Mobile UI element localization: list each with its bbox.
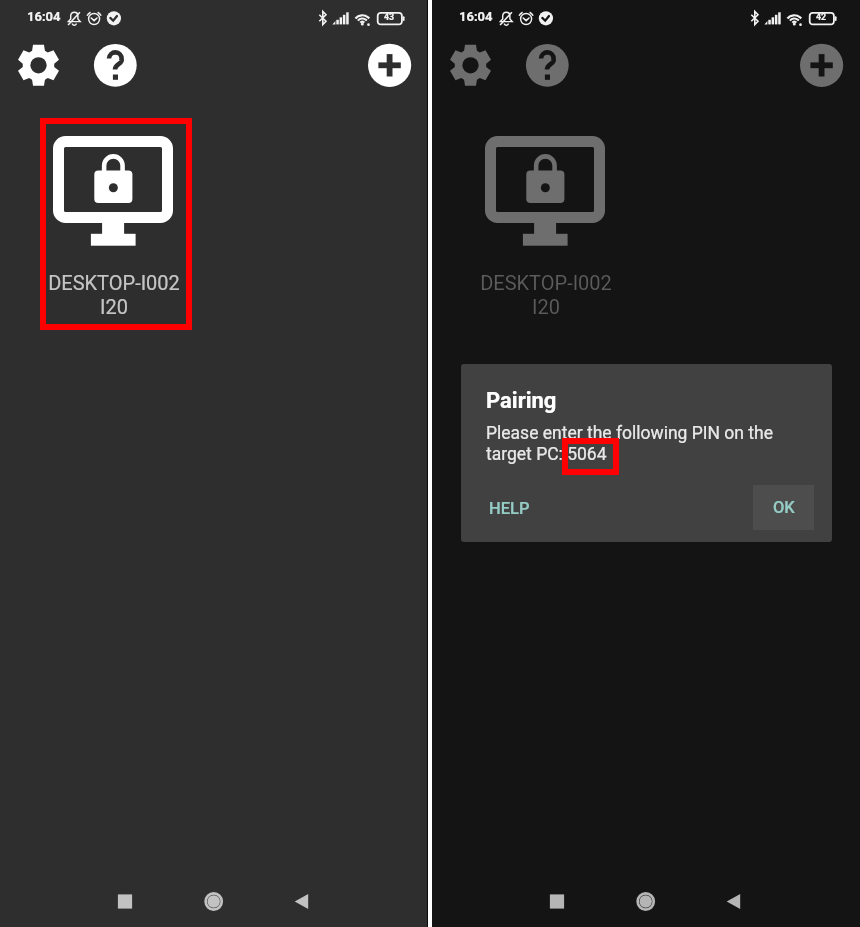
- staticText: 16:04: [459, 9, 493, 24]
- staticText: Pairing: [486, 388, 557, 414]
- staticText: 43: [384, 12, 395, 22]
- staticText: 42: [816, 12, 827, 22]
- button[interactable]: Help: [524, 42, 570, 88]
- button[interactable]: HELP: [479, 490, 539, 526]
- staticText: OK: [773, 498, 795, 517]
- staticText: HELP: [489, 499, 530, 518]
- staticText: 16:04: [27, 9, 61, 24]
- button[interactable]: Add device: [798, 42, 844, 88]
- button[interactable]: Help: [92, 42, 138, 88]
- button[interactable]: Settings: [15, 42, 61, 88]
- staticText: DESKTOP-I002 I20: [38, 271, 190, 319]
- button[interactable]: Add device: [366, 42, 412, 88]
- button[interactable]: [40, 118, 192, 330]
- button[interactable]: OK: [753, 485, 814, 530]
- staticText: Please enter the following PIN on the ta…: [486, 423, 773, 465]
- button[interactable]: [472, 118, 624, 330]
- button[interactable]: Settings: [447, 42, 493, 88]
- staticText: DESKTOP-I002 I20: [470, 271, 622, 319]
